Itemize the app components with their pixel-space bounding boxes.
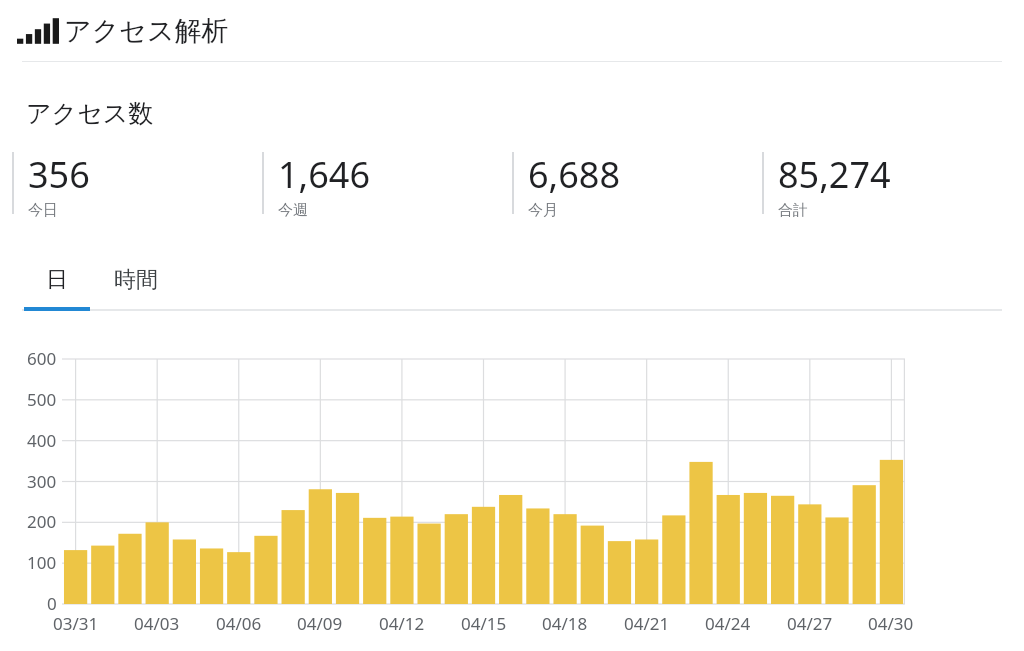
staticText: 日 (46, 266, 68, 294)
other: Access analytics (15, 15, 59, 47)
button[interactable]: 356 (12, 150, 262, 220)
staticText: 6,688 (528, 150, 621, 199)
staticText: 100 (27, 551, 57, 574)
staticText: 500 (27, 388, 57, 411)
staticText: 600 (27, 347, 57, 370)
staticText: 04/21 (624, 612, 670, 635)
button[interactable]: Access analytics (0, 0, 1024, 61)
staticText: 今週 (278, 201, 308, 220)
staticText: 04/18 (542, 612, 588, 635)
staticText: 04/15 (461, 612, 507, 635)
staticText: アクセス数 (26, 98, 154, 129)
staticText: 合計 (778, 201, 808, 220)
staticText: 時間 (114, 266, 158, 294)
staticText: 1,646 (278, 150, 371, 199)
staticText: 04/03 (134, 612, 180, 635)
button[interactable]: 6,688 (512, 150, 762, 220)
staticText: 04/24 (705, 612, 751, 635)
staticText: 0 (47, 592, 57, 615)
button[interactable]: 時間 (90, 258, 182, 302)
staticText: 04/06 (216, 612, 262, 635)
button[interactable]: 日 (24, 258, 90, 302)
staticText: 04/12 (379, 612, 425, 635)
staticText: 400 (27, 429, 57, 452)
staticText: 04/27 (787, 612, 833, 635)
staticText: 04/09 (297, 612, 343, 635)
staticText: 356 (28, 150, 90, 199)
button[interactable]: 1,646 (262, 150, 512, 220)
staticText: 今月 (528, 201, 558, 220)
staticText: 04/30 (868, 612, 914, 635)
staticText: アクセス解析 (64, 14, 229, 48)
staticText: 今日 (28, 201, 58, 220)
staticText: 85,274 (778, 150, 891, 199)
staticText: 200 (27, 510, 57, 533)
staticText: 300 (27, 470, 57, 493)
button[interactable]: 85,274 (762, 150, 1012, 220)
staticText: 03/31 (53, 612, 99, 635)
